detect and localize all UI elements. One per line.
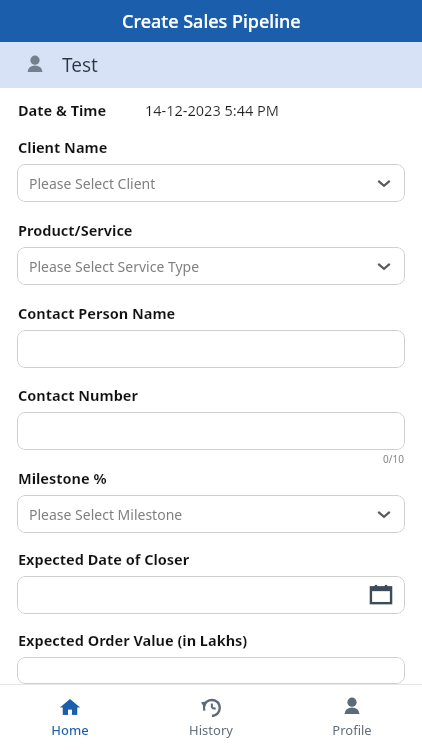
button[interactable]: [17, 330, 405, 368]
button[interactable]: [17, 657, 405, 684]
button[interactable]: History: [140, 688, 281, 747]
button[interactable]: Please Select Service Type: [17, 247, 405, 285]
button[interactable]: Home: [0, 688, 140, 747]
staticText: Create Sales Pipeline: [122, 9, 301, 34]
staticText: Date & Time: [18, 100, 107, 120]
button[interactable]: Pick date: [369, 583, 393, 607]
staticText: Please Select Milestone: [29, 505, 183, 524]
staticText: Test: [62, 52, 98, 78]
staticText: Please Select Service Type: [29, 257, 200, 276]
staticText: Product/Service: [18, 220, 133, 240]
button[interactable]: Profile: [281, 688, 422, 747]
staticText: Expected Date of Closer: [18, 549, 190, 569]
staticText: Expected Order Value (in Lakhs): [18, 630, 248, 650]
staticText: Home: [51, 721, 89, 739]
staticText: 14-12-2023 5:44 PM: [145, 100, 279, 120]
staticText: 0/10: [383, 452, 404, 466]
staticText: History: [189, 721, 233, 739]
staticText: Profile: [332, 721, 372, 739]
button[interactable]: Test: [0, 42, 422, 88]
button[interactable]: Pick date: [17, 576, 405, 614]
staticText: Client Name: [18, 137, 108, 157]
button[interactable]: Please Select Milestone: [17, 495, 405, 533]
staticText: Contact Number: [18, 385, 138, 405]
staticText: Milestone %: [18, 468, 107, 488]
button[interactable]: Please Select Client: [17, 164, 405, 202]
button[interactable]: [17, 412, 405, 450]
staticText: Contact Person Name: [18, 303, 176, 323]
staticText: Please Select Client: [29, 174, 156, 193]
